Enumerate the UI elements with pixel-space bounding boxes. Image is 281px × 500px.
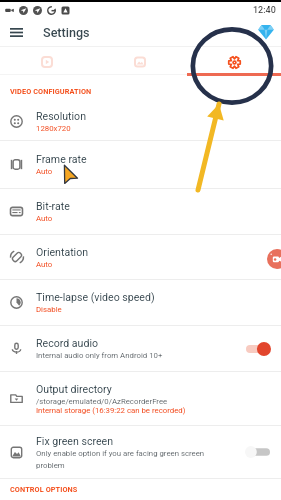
staticText: Only enable option if you are facing gre…	[36, 449, 212, 470]
staticText: Resolution	[36, 110, 87, 122]
button[interactable]: Open navigation menu	[5, 21, 28, 44]
staticText: Orientation	[36, 246, 89, 258]
staticText: Auto	[36, 214, 53, 223]
staticText: Disable	[36, 305, 62, 314]
button[interactable]: Video tab	[0, 48, 93, 76]
staticText: Time-lapse (video speed)	[36, 291, 155, 303]
staticText: Frame rate	[36, 153, 87, 165]
staticText: Auto	[36, 260, 53, 269]
button[interactable]: Images tab	[93, 48, 187, 76]
staticText: VIDEO CONFIGURATION	[10, 87, 92, 96]
staticText: Output directory	[36, 383, 112, 395]
staticText: Record audio	[36, 337, 99, 349]
staticText: Internal audio only from Android 10+	[36, 351, 163, 360]
button[interactable]: Settings tab	[187, 48, 281, 76]
button[interactable]: Premium	[256, 22, 276, 42]
button[interactable]: Start recording	[267, 249, 281, 269]
staticText: /storage/emulated/0/AzRecorderFree	[36, 397, 168, 406]
staticText: Auto	[36, 167, 53, 176]
staticText: CONTROL OPTIONS	[10, 485, 78, 494]
button[interactable]: Switch on	[246, 341, 270, 357]
button[interactable]: Time-lapse (video speed)	[0, 280, 281, 325]
staticText: 12:40	[253, 5, 276, 16]
button[interactable]: Fix green screen	[0, 426, 281, 478]
staticText: Fix green screen	[36, 435, 114, 447]
staticText: Bit-rate	[36, 200, 70, 212]
staticText: 1280x720	[36, 124, 71, 133]
button[interactable]: Switch off	[246, 444, 270, 460]
button[interactable]: Record audio	[0, 326, 281, 371]
button[interactable]: Frame rate	[0, 141, 281, 188]
button[interactable]: Resolution	[0, 102, 281, 140]
button[interactable]: Orientation	[0, 235, 281, 279]
button[interactable]: Bit-rate	[0, 189, 281, 234]
staticText: Settings	[43, 25, 90, 40]
button[interactable]: Output directory	[0, 372, 281, 425]
staticText: Internal storage (16:39:22 can be record…	[36, 406, 186, 415]
